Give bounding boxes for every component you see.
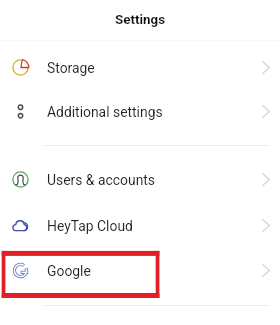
button[interactable]: Storage bbox=[0, 45, 280, 90]
staticText: Google bbox=[47, 263, 91, 279]
staticText: Users & accounts bbox=[47, 172, 156, 188]
staticText: HeyTap Cloud bbox=[47, 218, 133, 234]
staticText: Settings bbox=[115, 12, 166, 28]
button[interactable]: HeyTap Cloud bbox=[0, 203, 280, 248]
button[interactable]: Additional settings bbox=[0, 89, 280, 134]
button[interactable]: Users & accounts bbox=[0, 157, 280, 202]
staticText: Additional settings bbox=[47, 104, 163, 120]
staticText: Storage bbox=[47, 60, 95, 76]
button[interactable]: Google bbox=[0, 248, 280, 293]
